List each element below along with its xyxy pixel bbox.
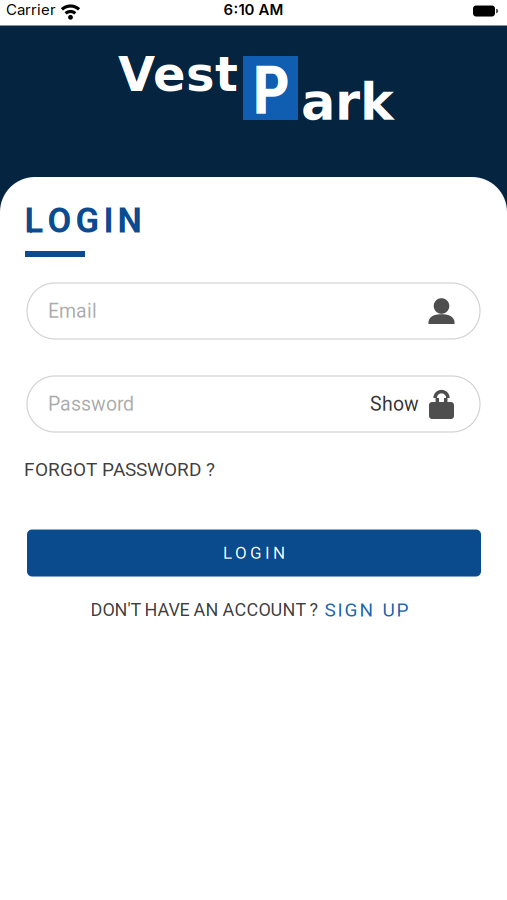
staticText: Show: [370, 393, 419, 415]
staticText: S I G N U P: [324, 599, 408, 621]
staticText: ark: [301, 72, 394, 132]
staticText: P: [252, 52, 290, 130]
staticText: Carrier: [6, 0, 56, 19]
staticText: Email: [48, 300, 97, 322]
button[interactable]: S I G N U P: [324, 599, 408, 621]
button[interactable]: Email: [27, 283, 480, 339]
staticText: L O G I N: [223, 543, 285, 563]
button[interactable]: Show: [370, 393, 419, 415]
button[interactable]: L O G I N: [27, 529, 481, 576]
staticText: Vest: [118, 46, 238, 102]
staticText: FORGOT PASSWORD ?: [24, 458, 215, 481]
staticText: DON'T HAVE AN ACCOUNT ?: [90, 599, 318, 620]
button[interactable]: Password: [27, 376, 480, 432]
staticText: Password: [48, 393, 134, 415]
staticText: 6:10 AM: [223, 0, 283, 19]
button[interactable]: FORGOT PASSWORD ?: [24, 458, 215, 481]
staticText: L O G I N: [24, 200, 141, 241]
